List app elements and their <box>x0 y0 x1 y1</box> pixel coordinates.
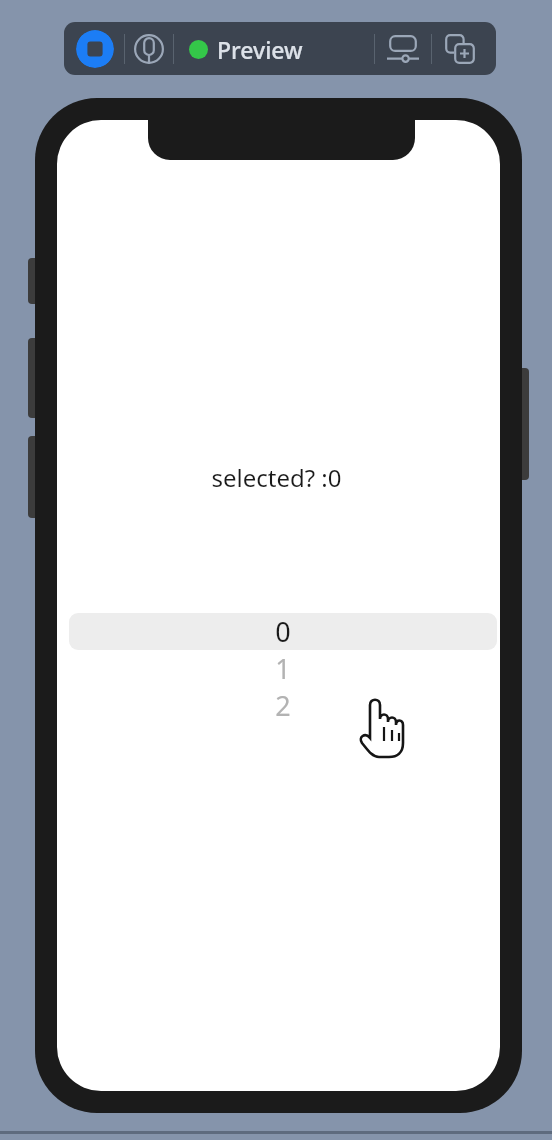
button[interactable]: Preview <box>174 27 318 71</box>
button[interactable]: Design mode <box>76 30 114 68</box>
staticText: selected? :0 <box>211 461 342 494</box>
button[interactable]: 0 <box>69 613 497 650</box>
button[interactable]: 2 <box>69 687 497 724</box>
staticText: Preview <box>217 34 303 65</box>
button[interactable]: Add preview <box>432 22 488 75</box>
staticText: 0 <box>275 613 291 650</box>
button[interactable]: Device settings <box>375 22 431 75</box>
button[interactable]: Blueprint mode <box>125 25 173 73</box>
staticText: 2 <box>275 687 291 724</box>
staticText: 1 <box>275 650 291 687</box>
button[interactable]: 1 <box>69 650 497 687</box>
